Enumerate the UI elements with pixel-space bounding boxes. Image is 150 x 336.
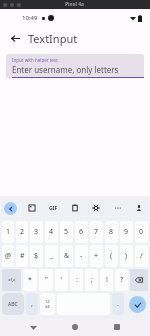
button[interactable]: Clipboard bbox=[68, 201, 82, 215]
button[interactable]: ; bbox=[85, 269, 98, 291]
button[interactable]: Enter bbox=[126, 293, 148, 315]
button[interactable]: 0 bbox=[135, 221, 148, 243]
staticText: TextInput bbox=[28, 31, 78, 46]
staticText: Input with helper text bbox=[12, 57, 58, 63]
button[interactable]: ? bbox=[115, 269, 128, 291]
staticText: * bbox=[28, 275, 32, 285]
button[interactable]: + bbox=[90, 245, 103, 267]
staticText: 0 bbox=[139, 227, 144, 237]
staticText: ? bbox=[120, 275, 124, 285]
button[interactable]: " bbox=[39, 269, 53, 291]
staticText: 5 bbox=[64, 227, 69, 237]
button[interactable]: , bbox=[26, 293, 38, 315]
staticText: : bbox=[76, 275, 78, 285]
staticText: 9 bbox=[124, 227, 129, 237]
button[interactable]: Recents bbox=[108, 318, 126, 336]
button[interactable]: _ bbox=[45, 245, 58, 267]
staticText: 10:49 bbox=[22, 14, 38, 22]
button[interactable]: - bbox=[75, 245, 88, 267]
button[interactable]: 7 bbox=[90, 221, 103, 243]
button[interactable]: 6 bbox=[75, 221, 88, 243]
button[interactable]: ABC bbox=[2, 293, 24, 315]
staticText: 34 bbox=[45, 304, 50, 309]
staticText: ; bbox=[91, 275, 93, 285]
button[interactable]: Back bbox=[24, 318, 42, 336]
button[interactable]: Input with helper text bbox=[6, 54, 144, 78]
staticText: 12 bbox=[45, 299, 50, 304]
staticText: 8 bbox=[109, 227, 114, 237]
button[interactable]: Voice input bbox=[132, 201, 146, 215]
button[interactable]: # bbox=[16, 245, 28, 267]
button[interactable]: Back bbox=[7, 30, 23, 46]
staticText: =\< bbox=[8, 277, 16, 284]
staticText: 6 bbox=[79, 227, 84, 237]
staticText: ' bbox=[61, 275, 63, 285]
staticText: _ bbox=[50, 251, 54, 261]
button[interactable]: More options bbox=[111, 201, 125, 215]
button[interactable]: 1 bbox=[2, 221, 14, 243]
button[interactable]: $ bbox=[30, 245, 43, 267]
staticText: $ bbox=[34, 251, 39, 261]
staticText: / bbox=[140, 251, 143, 261]
staticText: + bbox=[94, 251, 99, 261]
staticText: 4 bbox=[49, 227, 54, 237]
button[interactable]: 2 bbox=[16, 221, 28, 243]
button[interactable]: 5 bbox=[60, 221, 73, 243]
staticText: ABC bbox=[8, 301, 18, 308]
button[interactable]: 8 bbox=[105, 221, 118, 243]
button[interactable]: ( bbox=[105, 245, 118, 267]
staticText: , bbox=[31, 299, 33, 309]
button[interactable]: GIF bbox=[46, 201, 60, 215]
button[interactable]: 12 bbox=[40, 293, 55, 315]
button[interactable]: Settings bbox=[89, 201, 103, 215]
staticText: - bbox=[80, 251, 83, 261]
button[interactable]: @ bbox=[2, 245, 14, 267]
button[interactable]: 4 bbox=[45, 221, 58, 243]
staticText: 7 bbox=[94, 227, 99, 237]
staticText: . bbox=[117, 299, 119, 309]
staticText: ( bbox=[110, 251, 113, 261]
staticText: GIF bbox=[49, 205, 58, 212]
button[interactable]: . bbox=[112, 293, 124, 315]
staticText: Pixel 4a bbox=[65, 1, 85, 8]
button[interactable]: ' bbox=[55, 269, 68, 291]
button[interactable]: Expand toolbar bbox=[4, 202, 17, 215]
staticText: 2 bbox=[20, 227, 25, 237]
button[interactable]: Home bbox=[66, 318, 84, 336]
button[interactable]: & bbox=[60, 245, 73, 267]
button[interactable]: ) bbox=[120, 245, 133, 267]
staticText: ) bbox=[125, 251, 128, 261]
staticText: Enter username, only letters bbox=[12, 64, 119, 75]
staticText: 3 bbox=[34, 227, 39, 237]
button[interactable]: Backspace bbox=[130, 269, 148, 291]
staticText: & bbox=[64, 251, 70, 261]
button[interactable]: 3 bbox=[30, 221, 43, 243]
button[interactable]: ! bbox=[100, 269, 113, 291]
button[interactable]: : bbox=[70, 269, 83, 291]
staticText: # bbox=[20, 251, 25, 261]
button[interactable]: * bbox=[23, 269, 37, 291]
staticText: ! bbox=[106, 275, 108, 285]
staticText: @ bbox=[5, 251, 12, 261]
button[interactable]: 9 bbox=[120, 221, 133, 243]
button[interactable]: / bbox=[135, 245, 148, 267]
button[interactable]: =\< bbox=[2, 269, 21, 291]
staticText: " bbox=[45, 275, 48, 285]
staticText: 1 bbox=[6, 227, 11, 237]
button[interactable]: Stickers bbox=[25, 201, 39, 215]
